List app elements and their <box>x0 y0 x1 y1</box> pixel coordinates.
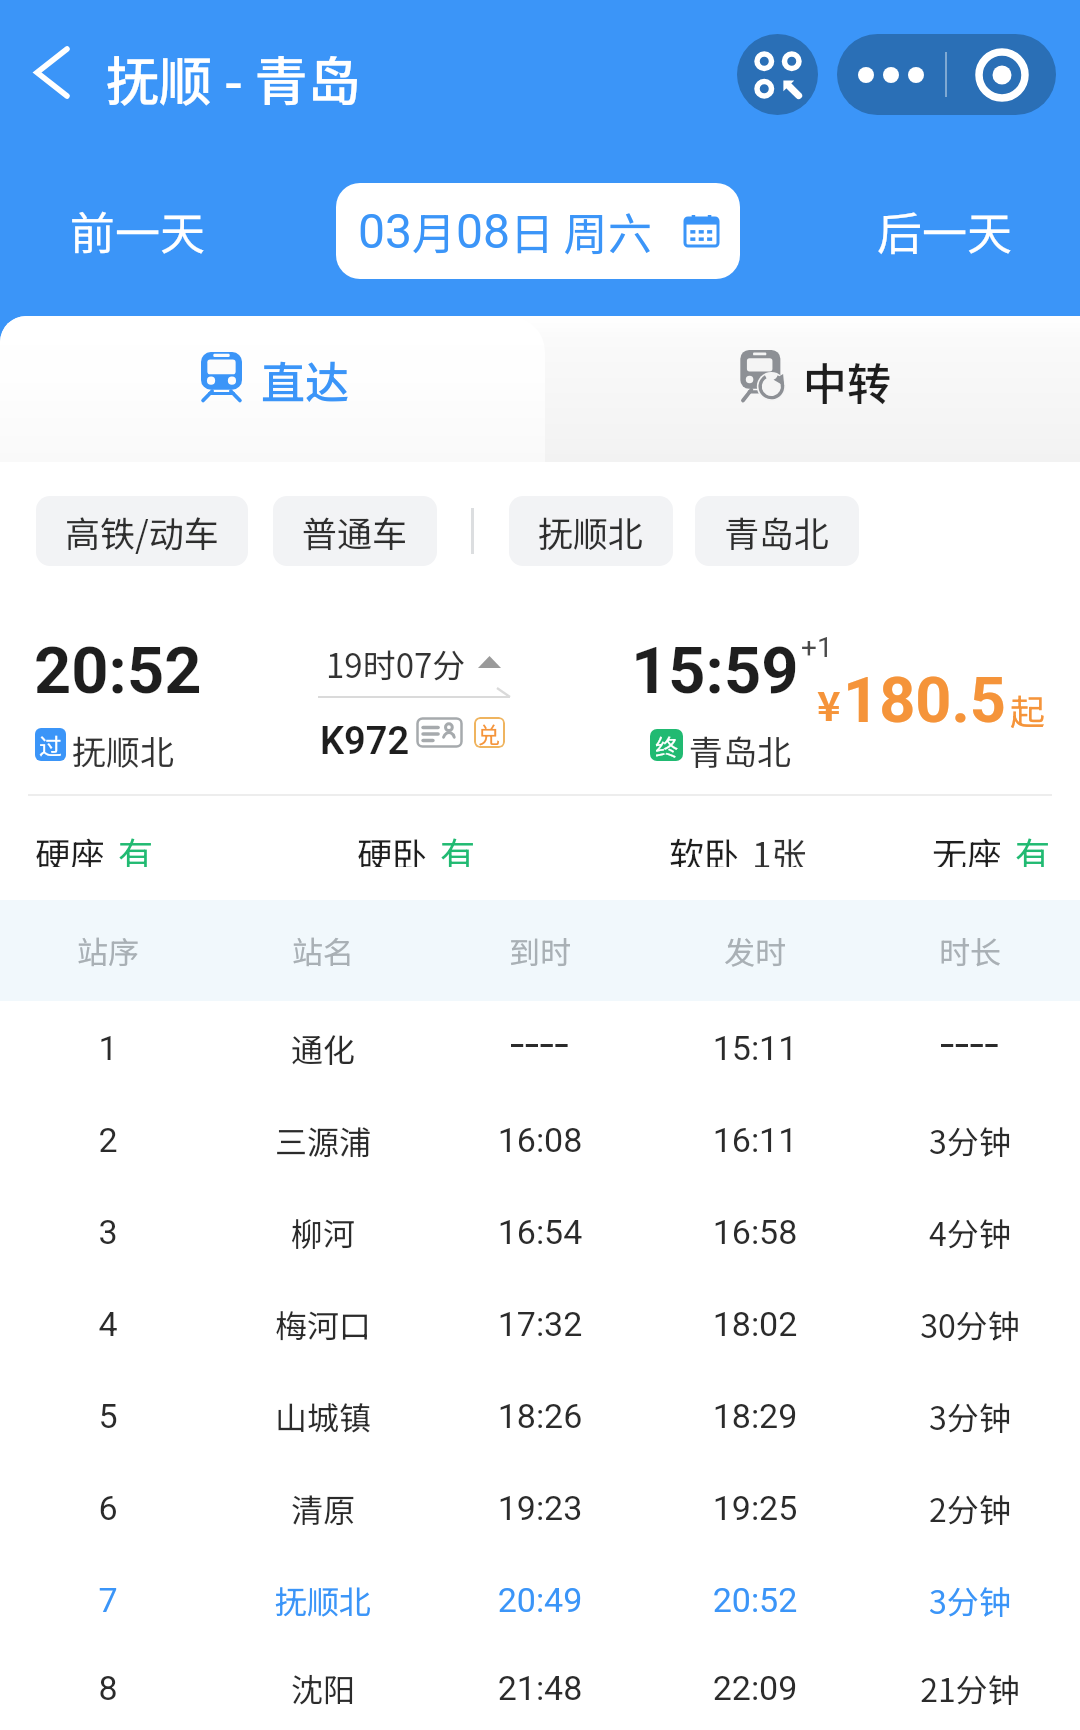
staticText: 硬卧 <box>357 827 428 867</box>
staticText: 抚顺 - 青岛 <box>106 40 361 117</box>
staticText: 清原 <box>243 1485 403 1531</box>
button[interactable]: Mini programs <box>737 34 818 115</box>
button[interactable]: 中转 <box>545 316 1080 462</box>
staticText: 青岛北 <box>689 726 791 775</box>
staticText: 15:11 <box>675 1028 835 1068</box>
button[interactable]: 7 <box>0 1554 1080 1646</box>
staticText: 7 <box>28 1580 188 1620</box>
staticText: 19时07分 <box>326 640 466 688</box>
staticText: ¥ <box>817 675 841 733</box>
staticText: 抚顺北 <box>72 726 174 775</box>
staticText: 抚顺北 <box>538 506 644 557</box>
button[interactable]: 前一天 <box>40 183 236 277</box>
staticText: 19:23 <box>460 1488 620 1528</box>
staticText: 21:48 <box>460 1668 620 1708</box>
staticText: 月 <box>412 199 456 263</box>
button[interactable]: Back <box>16 28 88 116</box>
staticText: 高铁/动车 <box>65 506 219 557</box>
staticText: 3 <box>28 1212 188 1252</box>
staticText: 16:54 <box>460 1212 620 1252</box>
staticText: 16:11 <box>675 1120 835 1160</box>
button[interactable]: 5 <box>0 1370 1080 1462</box>
staticText: 青岛北 <box>724 506 830 557</box>
staticText: 3分钟 <box>890 1393 1050 1439</box>
button[interactable]: 2 <box>0 1094 1080 1186</box>
staticText: 4分钟 <box>890 1209 1050 1255</box>
staticText: 沈阳 <box>243 1665 403 1711</box>
staticText: 17:32 <box>460 1304 620 1344</box>
staticText: 发时 <box>695 928 815 973</box>
staticText: 站序 <box>48 928 168 973</box>
button[interactable]: More options <box>837 34 945 115</box>
button[interactable]: 普通车 <box>273 496 437 566</box>
button[interactable]: 高铁/动车 <box>36 496 248 566</box>
button[interactable]: 1 <box>0 1002 1080 1094</box>
staticText: 站名 <box>263 928 383 973</box>
staticText: 1张 <box>752 827 807 867</box>
staticText: 前一天 <box>70 198 206 263</box>
staticText: 有 <box>440 827 476 867</box>
staticText: 20:52 <box>34 633 202 709</box>
staticText: 22:09 <box>675 1668 835 1708</box>
staticText: 21分钟 <box>890 1665 1050 1711</box>
staticText: 梅河口 <box>243 1301 403 1347</box>
staticText: 山城镇 <box>243 1393 403 1439</box>
staticText: 柳河 <box>243 1209 403 1255</box>
staticText: 15:59 <box>631 633 799 709</box>
button[interactable]: 后一天 <box>847 183 1043 277</box>
staticText: 软卧 <box>669 827 740 867</box>
staticText: 08 <box>456 203 510 259</box>
button[interactable]: 03 <box>336 183 740 279</box>
staticText: 6 <box>28 1488 188 1528</box>
button[interactable]: Close <box>947 34 1056 115</box>
staticText: 2分钟 <box>890 1485 1050 1531</box>
staticText: 兑 <box>478 717 501 748</box>
staticText: 直达 <box>261 348 349 412</box>
staticText: 3分钟 <box>890 1117 1050 1163</box>
button[interactable]: 青岛北 <box>695 496 859 566</box>
staticText: 20:52 <box>675 1580 835 1620</box>
staticText: 有 <box>118 827 154 867</box>
staticText: 03 <box>358 203 412 259</box>
staticText: 3分钟 <box>890 1577 1050 1623</box>
staticText: K972 <box>320 719 410 764</box>
staticText: 5 <box>28 1396 188 1436</box>
staticText: 4 <box>28 1304 188 1344</box>
staticText: 18:26 <box>460 1396 620 1436</box>
button[interactable]: 抚顺北 <box>509 496 673 566</box>
staticText: 到时 <box>480 928 600 973</box>
staticText: 18:02 <box>675 1304 835 1344</box>
staticText: 日 周六 <box>510 199 652 263</box>
staticText: 有 <box>1015 827 1051 867</box>
button[interactable]: 直达 <box>0 316 545 462</box>
button[interactable]: 6 <box>0 1462 1080 1554</box>
staticText: 2 <box>28 1120 188 1160</box>
staticText: 时长 <box>910 928 1030 973</box>
staticText: 30分钟 <box>890 1301 1050 1347</box>
staticText: 起 <box>1010 684 1046 735</box>
staticText: +1 <box>801 631 833 664</box>
staticText: 16:58 <box>675 1212 835 1252</box>
staticText: 19:25 <box>675 1488 835 1528</box>
staticText: 硬座 <box>35 827 106 867</box>
staticText: 中转 <box>803 349 891 413</box>
staticText: 通化 <box>243 1025 403 1071</box>
button[interactable]: 8 <box>0 1646 1080 1730</box>
staticText: 后一天 <box>877 198 1013 263</box>
staticText: 8 <box>28 1668 188 1708</box>
staticText: 三源浦 <box>243 1117 403 1163</box>
staticText: 过 <box>39 728 62 761</box>
staticText: 抚顺北 <box>243 1577 403 1623</box>
staticText: 普通车 <box>302 506 408 557</box>
button[interactable]: 3 <box>0 1186 1080 1278</box>
staticText: 20:49 <box>460 1580 620 1620</box>
staticText: 终 <box>655 729 678 761</box>
staticText: 无座 <box>932 827 1003 867</box>
staticText: 1 <box>28 1028 188 1068</box>
staticText: 18:29 <box>675 1396 835 1436</box>
staticText: 16:08 <box>460 1120 620 1160</box>
button[interactable]: 4 <box>0 1278 1080 1370</box>
staticText: 180.5 <box>843 664 1006 738</box>
